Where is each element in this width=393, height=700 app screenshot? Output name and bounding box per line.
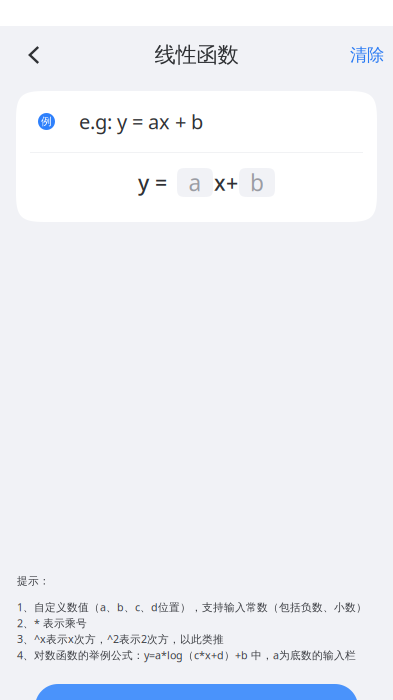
staticText: 3、^x表示x次方，^2表示2次方，以此类推	[17, 632, 224, 646]
staticText: 清除	[350, 44, 384, 66]
staticText: 1、自定义数值（a、b、c、d位置），支持输入常数（包括负数、小数）	[17, 600, 367, 614]
staticText: 2、* 表示乘号	[17, 616, 87, 630]
staticText: y =	[138, 168, 167, 197]
button[interactable]	[35, 684, 358, 700]
staticText: 4、对数函数的举例公式：y=a*log（c*x+d）+b 中，a为底数的输入栏	[17, 648, 356, 662]
staticText: 例	[41, 115, 52, 128]
staticText: e.g: y = ax + b	[79, 108, 203, 135]
button[interactable]: 返回	[0, 30, 58, 80]
staticText: b	[250, 167, 264, 197]
button[interactable]: 清除	[341, 30, 393, 80]
staticText: a	[188, 167, 201, 197]
staticText: x+	[214, 168, 238, 197]
staticText: 提示：	[17, 574, 50, 587]
staticText: 线性函数	[154, 42, 238, 68]
